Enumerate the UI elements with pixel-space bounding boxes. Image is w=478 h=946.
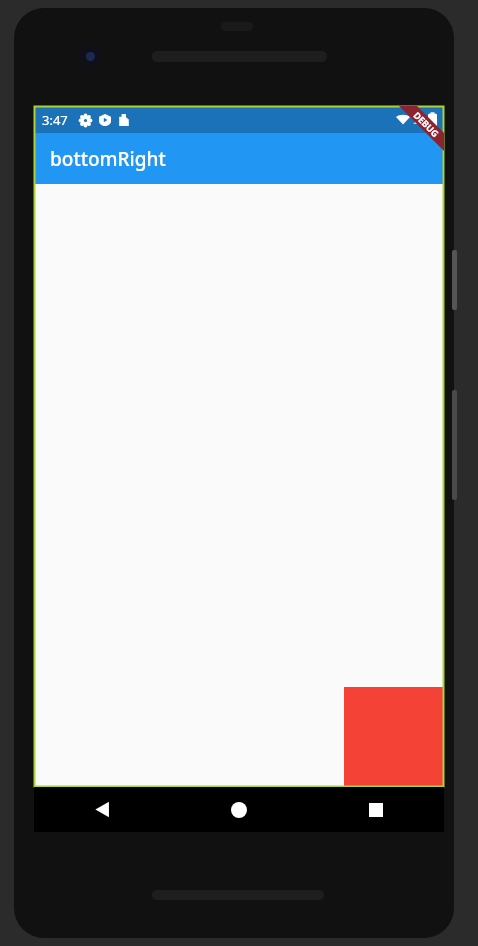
staticText: DEBUG [411,109,442,139]
button[interactable]: Recent apps [307,787,444,832]
button[interactable] [344,687,444,787]
staticText: bottomRight [50,146,166,172]
button[interactable]: Back [34,787,170,832]
button[interactable]: Home [170,787,307,832]
staticText: 3:47 [42,111,68,129]
button[interactable]: Debug banner [394,106,444,156]
